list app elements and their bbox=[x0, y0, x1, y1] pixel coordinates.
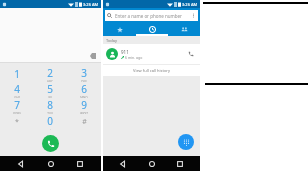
staticText: 911 bbox=[121, 49, 129, 55]
button[interactable]: 5 bbox=[33, 82, 67, 98]
staticText: 7 bbox=[14, 98, 20, 112]
button[interactable]: Call back bbox=[185, 48, 197, 60]
button[interactable]: Call bbox=[42, 135, 59, 152]
staticText: TUV bbox=[47, 112, 53, 114]
staticText: 1 bbox=[14, 67, 20, 81]
button[interactable]: 7 bbox=[0, 98, 33, 114]
staticText: GHI bbox=[14, 96, 20, 98]
button[interactable]: Recents bbox=[136, 23, 168, 36]
staticText: 4 bbox=[14, 82, 20, 96]
button[interactable]: # bbox=[67, 114, 101, 130]
staticText: 5 bbox=[47, 82, 53, 96]
staticText: WXYZ bbox=[80, 112, 88, 114]
staticText: JKL bbox=[48, 96, 53, 98]
button[interactable]: View full call history bbox=[103, 65, 200, 76]
staticText: DEF bbox=[81, 80, 87, 82]
button[interactable]: Dialpad bbox=[178, 134, 194, 150]
button[interactable]: Back bbox=[115, 156, 131, 171]
staticText: + bbox=[49, 128, 51, 130]
button[interactable]: 3 bbox=[67, 66, 101, 82]
button[interactable]: 9 bbox=[67, 98, 101, 114]
staticText: ABC bbox=[47, 80, 53, 82]
staticText: 6 bbox=[81, 82, 87, 96]
staticText: * bbox=[15, 117, 19, 127]
staticText: 3:26 AM bbox=[182, 2, 198, 7]
button[interactable]: Home bbox=[43, 156, 59, 171]
staticText: 6 min. ago bbox=[125, 55, 143, 60]
button[interactable]: Backspace bbox=[88, 51, 97, 60]
staticText: PQRS bbox=[13, 112, 21, 114]
staticText: Today bbox=[106, 38, 118, 43]
button[interactable]: 8 bbox=[33, 98, 67, 114]
staticText: 3:26 AM bbox=[83, 2, 99, 7]
staticText: # bbox=[82, 117, 87, 127]
button[interactable]: Home bbox=[144, 156, 160, 171]
button[interactable]: Enter a name or phone number bbox=[107, 10, 196, 21]
button[interactable]: 1 bbox=[0, 66, 33, 82]
staticText: Enter a name or phone number bbox=[115, 13, 182, 19]
button[interactable]: Recents bbox=[72, 156, 88, 171]
button[interactable]: Favorites bbox=[103, 23, 136, 36]
button[interactable]: * bbox=[0, 114, 33, 130]
button[interactable]: 2 bbox=[33, 66, 67, 82]
button[interactable]: Recents bbox=[172, 156, 188, 171]
button[interactable]: Contacts bbox=[168, 23, 200, 36]
button[interactable]: 0 bbox=[33, 114, 67, 130]
staticText: MNO bbox=[80, 96, 88, 98]
button[interactable]: 911 bbox=[106, 44, 197, 64]
button[interactable]: Back bbox=[13, 156, 29, 171]
staticText: 3 bbox=[81, 66, 87, 80]
staticText: 0 bbox=[47, 114, 53, 128]
staticText: View full call history bbox=[133, 68, 170, 73]
staticText: 9 bbox=[81, 98, 87, 112]
staticText: 2 bbox=[47, 66, 53, 80]
staticText: 8 bbox=[47, 98, 53, 112]
button[interactable]: 4 bbox=[0, 82, 33, 98]
button[interactable]: 6 bbox=[67, 82, 101, 98]
